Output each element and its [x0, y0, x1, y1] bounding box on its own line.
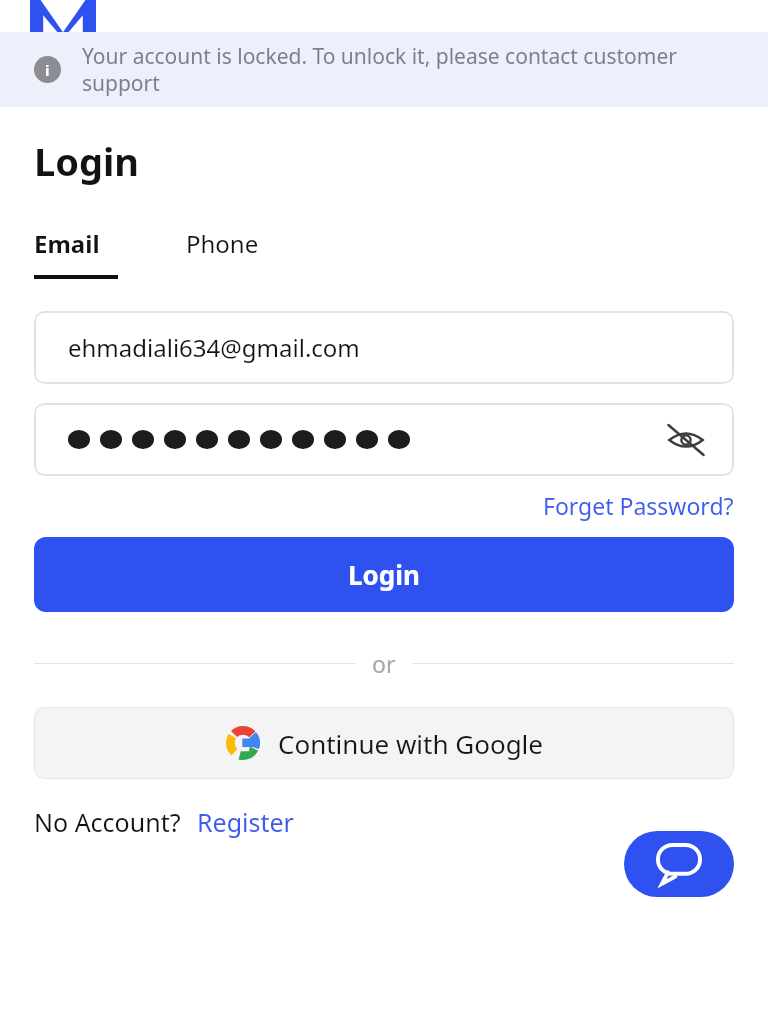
staticText: Login: [34, 135, 140, 187]
button[interactable]: Forget Password?: [543, 490, 734, 521]
staticText: i: [45, 60, 50, 80]
button[interactable]: ehmadiali634@gmail.com: [34, 311, 734, 384]
button[interactable]: Phone: [186, 227, 259, 260]
staticText: Phone: [186, 227, 259, 260]
staticText: Email: [34, 227, 100, 260]
button[interactable]: Register: [197, 805, 294, 839]
button[interactable]: Show password: [664, 418, 708, 462]
button[interactable]: Continue with Google: [34, 707, 734, 779]
staticText: Forget Password?: [543, 490, 734, 521]
button[interactable]: Login: [34, 537, 734, 612]
staticText: ehmadiali634@gmail.com: [68, 331, 360, 364]
staticText: Continue with Google: [278, 726, 543, 761]
staticText: or: [372, 648, 396, 679]
staticText: Register: [197, 805, 294, 839]
staticText: Your account is locked. To unlock it, pl…: [82, 42, 744, 97]
staticText: No Account?: [34, 805, 181, 839]
button[interactable]: Email: [34, 227, 118, 279]
staticText: Login: [348, 557, 420, 592]
button[interactable]: Show password: [34, 403, 734, 476]
button[interactable]: Chat support: [624, 831, 734, 897]
